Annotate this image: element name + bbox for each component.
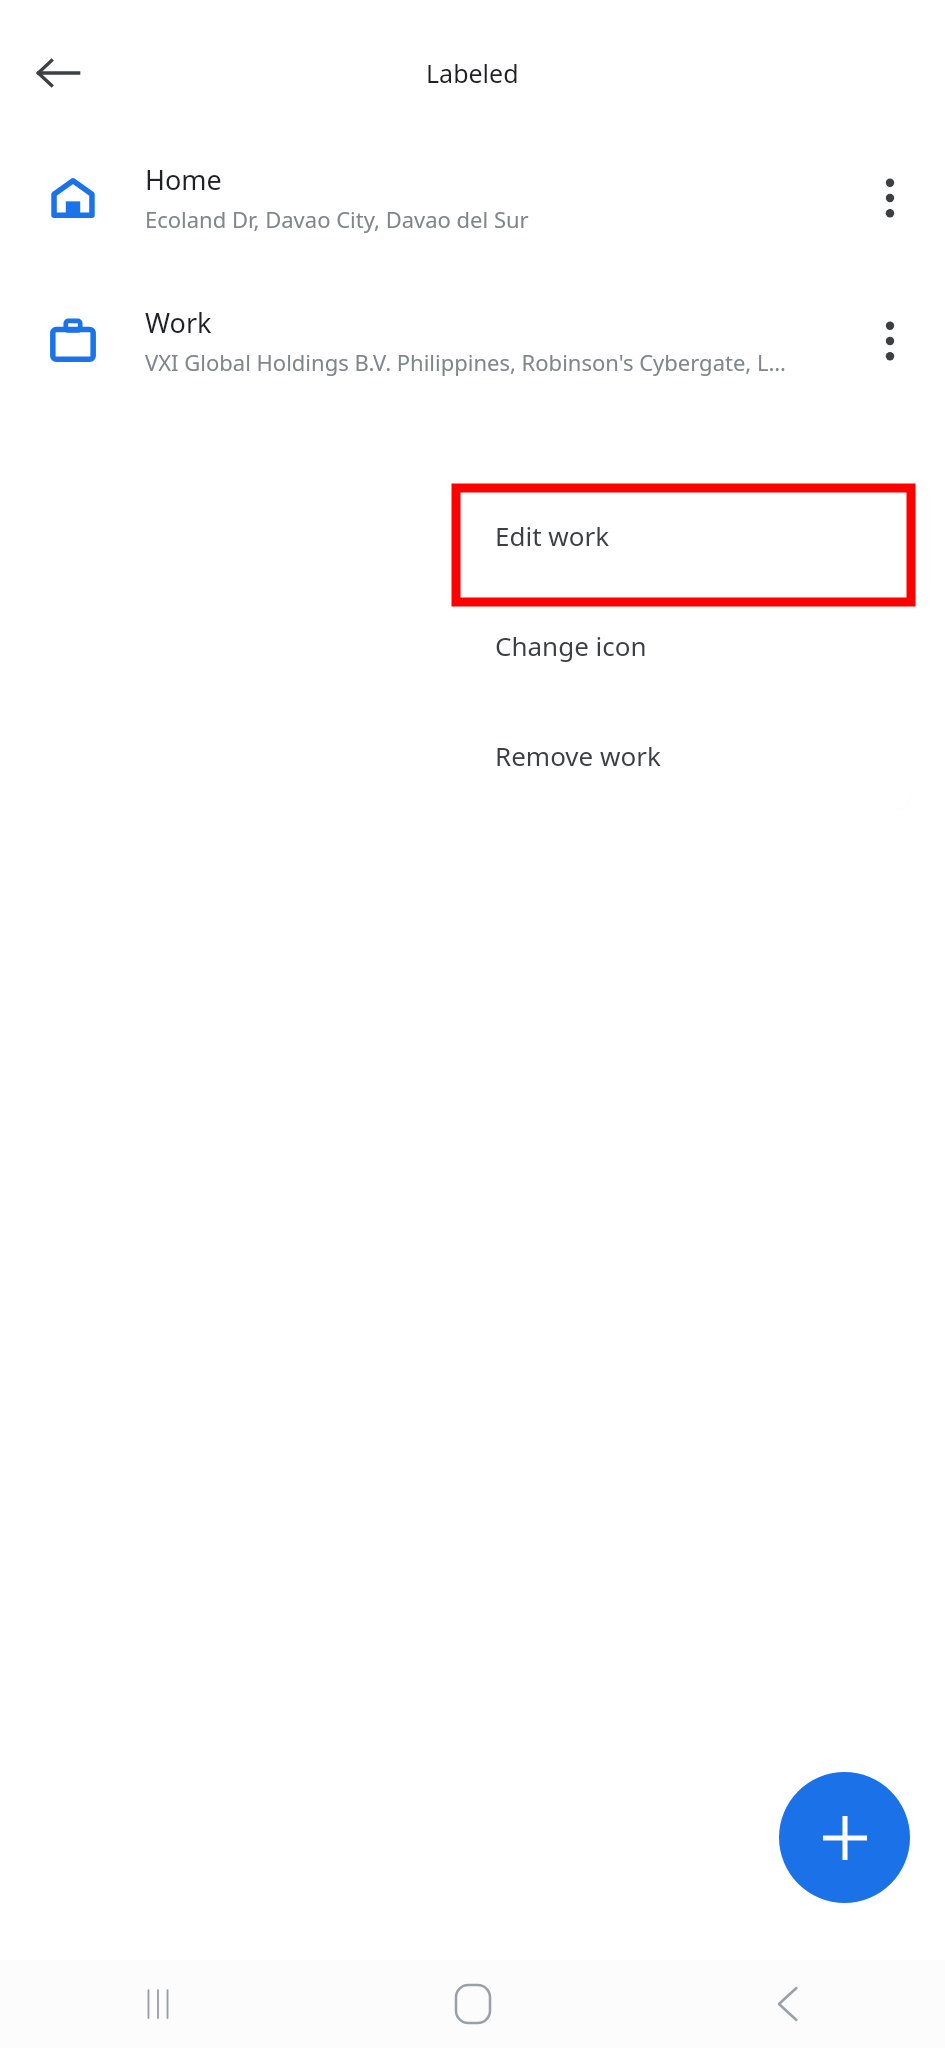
button[interactable]: Change icon [456, 590, 911, 700]
staticText: Remove work [495, 738, 661, 773]
button[interactable]: Edit work [456, 480, 911, 590]
staticText: Work [145, 304, 212, 341]
button[interactable]: Work [0, 288, 945, 393]
button[interactable]: More options [835, 145, 945, 250]
button[interactable]: Home [315, 1960, 630, 2048]
button[interactable]: More options [835, 288, 945, 393]
button[interactable]: Recent apps [0, 1960, 315, 2048]
button[interactable]: Back [630, 1960, 945, 2048]
button[interactable]: Remove work [456, 700, 911, 810]
staticText: Change icon [495, 628, 647, 663]
button[interactable]: Add label [779, 1772, 910, 1903]
staticText: Edit work [495, 518, 610, 553]
staticText: Home [145, 161, 222, 198]
button[interactable]: Back [27, 42, 89, 104]
staticText: Ecoland Dr, Davao City, Davao del Sur [145, 204, 529, 234]
staticText: VXI Global Holdings B.V. Philippines, Ro… [145, 347, 786, 377]
button[interactable]: Home [0, 145, 945, 250]
staticText: Labeled [426, 56, 519, 90]
